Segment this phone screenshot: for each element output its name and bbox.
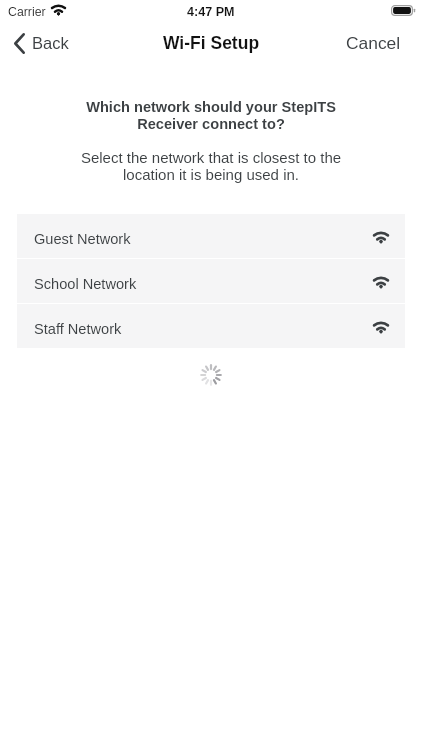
other: Wi-Fi signal xyxy=(51,4,66,16)
staticText: Wi-Fi Setup xyxy=(163,33,260,53)
other: Signal strength xyxy=(373,231,389,244)
other: Signal strength xyxy=(373,321,389,334)
staticText: School Network xyxy=(34,276,137,292)
button[interactable]: Cancel xyxy=(330,27,422,64)
staticText: Back xyxy=(32,34,69,52)
button[interactable]: Back xyxy=(0,26,79,64)
other: Signal strength xyxy=(373,276,389,289)
staticText: Select the network that is closest to th… xyxy=(28,149,394,183)
staticText: Guest Network xyxy=(34,231,131,247)
other: Battery full xyxy=(391,5,416,16)
staticText: Staff Network xyxy=(34,321,122,337)
staticText: 4:47 PM xyxy=(187,5,235,19)
staticText: Cancel xyxy=(346,33,401,52)
button[interactable]: Staff Network xyxy=(17,304,405,348)
button[interactable]: Guest Network xyxy=(17,214,405,258)
button[interactable]: School Network xyxy=(17,259,405,303)
staticText: Which network should your StepITS Receiv… xyxy=(36,99,386,133)
staticText: Carrier xyxy=(8,5,46,19)
